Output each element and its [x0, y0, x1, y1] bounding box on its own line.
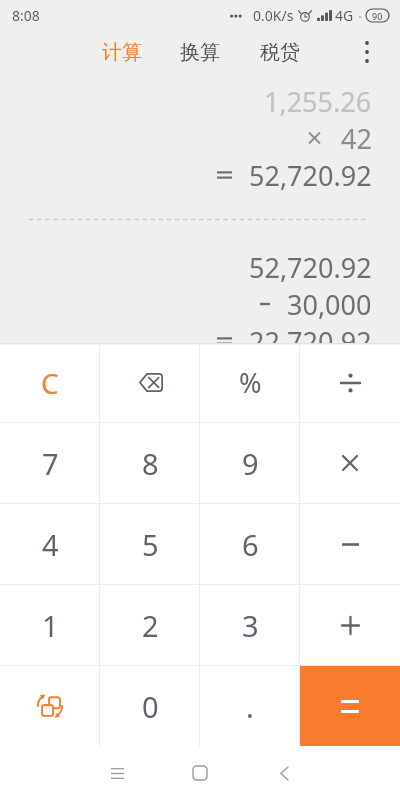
staticText: 8 [142, 444, 159, 483]
other: Backspace [138, 373, 163, 392]
staticText: C [41, 364, 59, 402]
button[interactable]: More options [347, 32, 387, 72]
button[interactable]: 3 [200, 585, 300, 665]
button[interactable]: 计算 [96, 32, 148, 73]
staticText: % [239, 364, 262, 401]
staticText: 0 [142, 687, 159, 726]
button[interactable]: 税贷 [254, 32, 306, 73]
staticText: 52,720.92 [249, 249, 372, 286]
staticText: 2 [142, 606, 159, 645]
staticText: 22,720.92 [249, 323, 372, 360]
staticText: 6 [242, 525, 259, 564]
staticText: 0.0K/s [253, 6, 294, 25]
button[interactable]: 5 [100, 504, 200, 584]
button[interactable] [300, 343, 400, 422]
button[interactable] [300, 504, 400, 584]
button[interactable]: . [200, 666, 300, 746]
staticText: 4G [335, 6, 354, 25]
button[interactable]: Backspace [100, 343, 200, 422]
staticText: 52,720.92 [249, 157, 372, 194]
staticText: 税贷 [260, 40, 300, 65]
button[interactable]: 4 [0, 504, 100, 584]
button[interactable]: Unit converter [0, 666, 100, 746]
button[interactable]: Back [254, 753, 314, 793]
button[interactable] [300, 585, 400, 665]
staticText: . [246, 687, 254, 726]
staticText: 4 [42, 525, 59, 564]
button[interactable]: 9 [200, 423, 300, 503]
staticText: 42 [341, 120, 372, 157]
button[interactable]: Home [170, 753, 230, 793]
button[interactable]: 2 [100, 585, 200, 665]
staticText: 换算 [180, 40, 220, 65]
button[interactable]: Recents [87, 753, 147, 793]
button[interactable] [300, 423, 400, 503]
staticText: 1,255.26 [264, 83, 372, 120]
button[interactable]: % [200, 343, 300, 422]
staticText: 7 [42, 444, 59, 483]
button[interactable]: 6 [200, 504, 300, 584]
other: Unit converter [35, 691, 65, 721]
button[interactable]: 换算 [174, 32, 226, 73]
button[interactable]: 7 [0, 423, 100, 503]
staticText: 9 [242, 444, 259, 483]
staticText: 5 [142, 525, 159, 564]
staticText: 1 [42, 606, 59, 645]
staticText: 计算 [102, 40, 142, 65]
staticText: 30,000 [287, 286, 372, 323]
button[interactable]: 0 [100, 666, 200, 746]
staticText: 3 [242, 606, 259, 645]
button[interactable]: 1 [0, 585, 100, 665]
button[interactable]: C [0, 343, 100, 422]
button[interactable]: 8 [100, 423, 200, 503]
staticText: 8:08 [12, 6, 40, 25]
button[interactable]: Equals [300, 666, 400, 746]
staticText: 90 [372, 10, 383, 22]
